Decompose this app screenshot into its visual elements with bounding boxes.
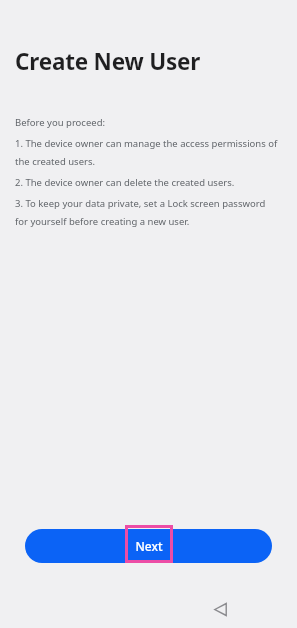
staticText: 3. To keep your data private, set a Lock…: [15, 197, 280, 228]
staticText: Create New User: [15, 46, 201, 77]
staticText: 2. The device owner can delete the creat…: [15, 176, 235, 189]
button[interactable]: Back: [206, 595, 234, 623]
staticText: 1. The device owner can manage the acces…: [15, 137, 280, 168]
staticText: Before you proceed:: [15, 116, 106, 129]
button[interactable]: Next: [25, 529, 272, 563]
staticText: Next: [135, 538, 163, 554]
